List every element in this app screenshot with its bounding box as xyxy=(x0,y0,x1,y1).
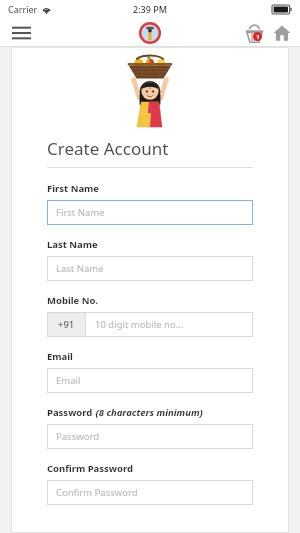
button[interactable]: Confirm Password xyxy=(47,480,253,505)
staticText: Last Name xyxy=(47,238,98,251)
button[interactable]: First Name xyxy=(47,200,253,225)
staticText: Carrier xyxy=(8,3,38,15)
staticText: 2:39 PM xyxy=(133,3,167,15)
staticText: Create Account xyxy=(47,137,169,160)
staticText: First Name xyxy=(47,182,100,195)
staticText: Mobile No. xyxy=(47,294,99,307)
staticText: 10 digit mobile no... xyxy=(95,318,184,331)
button[interactable]: Home xyxy=(268,19,296,47)
staticText: 1 xyxy=(256,33,260,41)
staticText: Password xyxy=(56,430,99,443)
staticText: Email xyxy=(56,374,81,387)
button[interactable]: Password xyxy=(47,424,253,449)
button[interactable]: Last Name xyxy=(47,256,253,281)
staticText: Last Name xyxy=(56,262,104,275)
staticText: Confirm Password xyxy=(47,462,133,475)
staticText: First Name xyxy=(56,206,105,219)
button[interactable]: Logo xyxy=(138,21,162,45)
staticText: +91 xyxy=(58,318,75,331)
button[interactable]: Email xyxy=(47,368,253,393)
staticText: Password xyxy=(47,406,93,419)
staticText: (8 characters minimum) xyxy=(93,406,203,419)
staticText: Confirm Password xyxy=(56,486,138,499)
button[interactable]: Menu xyxy=(6,18,36,47)
button[interactable]: +91 xyxy=(47,312,253,337)
staticText: Email xyxy=(47,350,73,363)
button[interactable]: Cart xyxy=(240,19,268,47)
